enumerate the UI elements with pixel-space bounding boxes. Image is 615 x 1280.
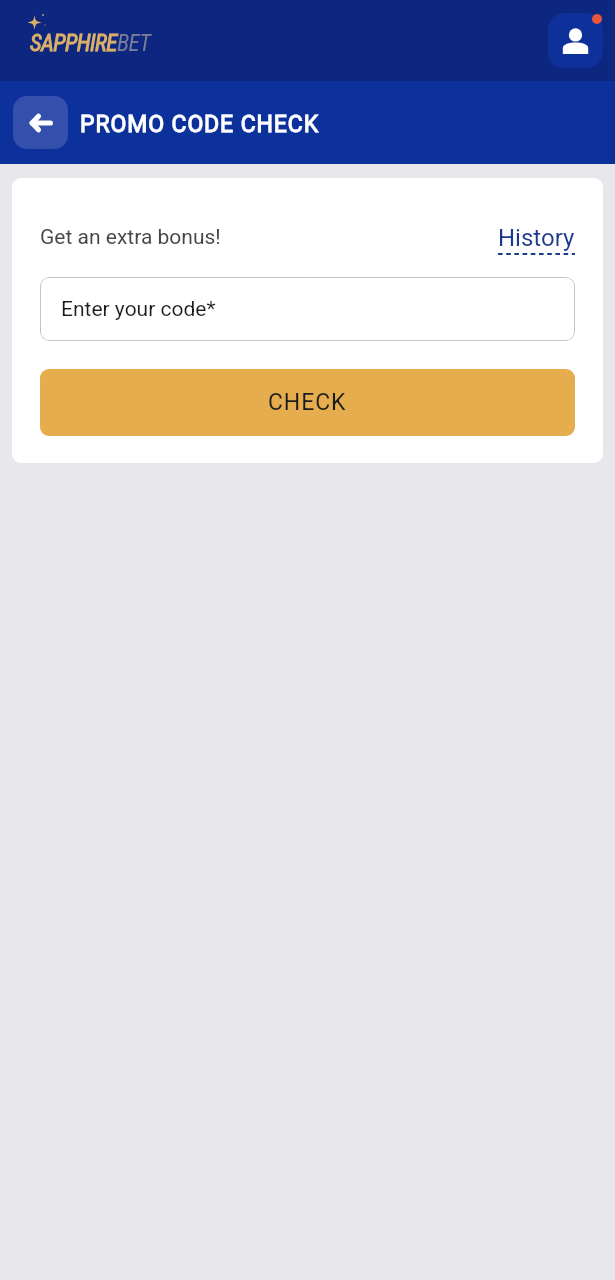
staticText: Get an extra bonus! <box>40 225 221 250</box>
button[interactable]: History <box>498 224 575 256</box>
button[interactable]: Enter your code* <box>40 277 575 341</box>
staticText: PROMO CODE CHECK <box>80 111 320 138</box>
button[interactable]: Profile <box>548 13 603 68</box>
button[interactable]: CHECK <box>40 369 575 436</box>
staticText: History <box>498 224 575 252</box>
button[interactable]: Back <box>13 96 68 149</box>
staticText: BET <box>117 30 151 57</box>
staticText: SAPPHIRE <box>30 30 117 57</box>
staticText: Enter your code* <box>61 297 216 322</box>
staticText: CHECK <box>268 389 347 416</box>
